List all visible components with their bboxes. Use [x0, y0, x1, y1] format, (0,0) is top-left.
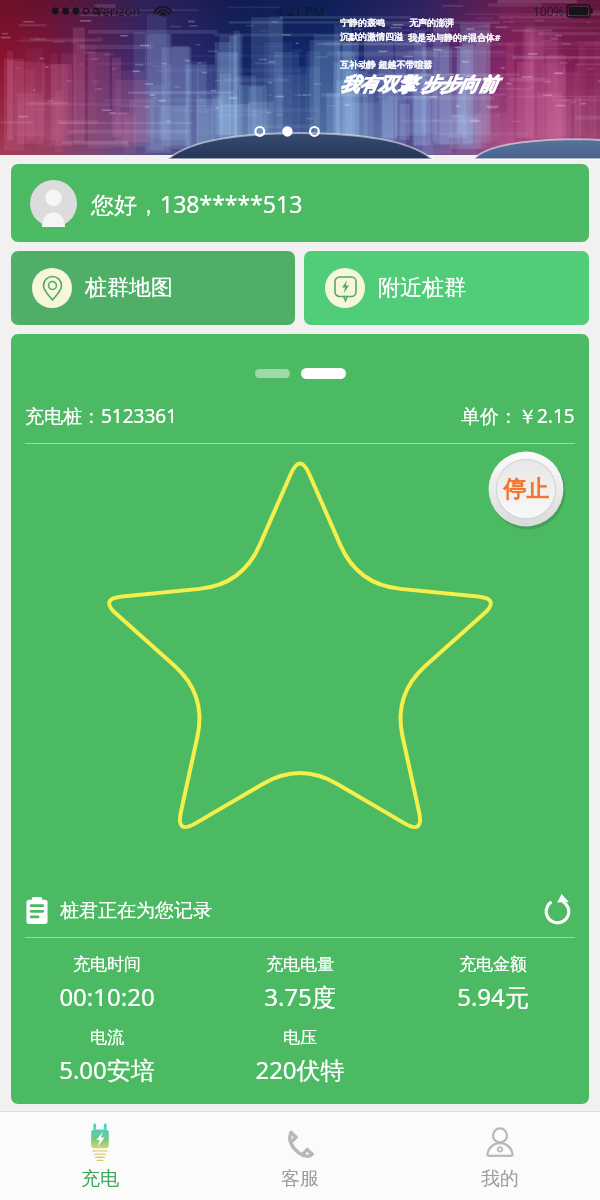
button[interactable]: 停止充电 [487, 450, 565, 528]
staticText: 我有双擎 步步向前 [340, 71, 497, 97]
staticText: 4:21 PM [276, 2, 325, 20]
staticText: 客服 [281, 1167, 319, 1191]
button[interactable]: 我的 [400, 1112, 600, 1200]
staticText: Verizon [95, 2, 141, 20]
staticText: 100% [533, 3, 564, 19]
staticText: 充电 [81, 1167, 119, 1191]
staticText: 充电时间 [73, 954, 141, 975]
staticText: 00:10:20 [59, 980, 155, 1013]
staticText: 您好，138*****513 [91, 188, 303, 219]
staticText: 5.94元 [457, 980, 529, 1013]
staticText: 互补动静 超越不带喧嚣 [340, 58, 433, 70]
button[interactable]: 桩群地图 [11, 251, 295, 325]
button[interactable]: 充电 [0, 1112, 200, 1200]
staticText: 停止 [503, 475, 549, 504]
staticText: 附近桩群 [378, 274, 466, 302]
staticText: 电流 [90, 1027, 124, 1048]
staticText: 电压 [283, 1027, 317, 1048]
button[interactable]: 客服 [200, 1112, 400, 1200]
staticText: 5.00安培 [59, 1053, 155, 1086]
staticText: 我是动与静的#混合体# [408, 31, 501, 43]
button[interactable]: 您好，138*****513 [11, 164, 589, 242]
staticText: 220伏特 [255, 1053, 345, 1086]
staticText: 无声的澎湃 [409, 17, 454, 28]
staticText: 充电桩：5123361 [25, 403, 178, 429]
staticText: 充电电量 [266, 954, 334, 975]
staticText: 我的 [481, 1167, 519, 1191]
button[interactable] [255, 369, 290, 378]
staticText: 充电金额 [459, 954, 527, 975]
staticText: 桩君正在为您记录 [60, 899, 212, 923]
staticText: 沉默的激情四溢 [340, 31, 403, 42]
staticText: 宁静的轰鸣 [340, 17, 385, 28]
button[interactable]: 附近桩群 [304, 251, 589, 325]
staticText: 单价：￥2.15 [461, 403, 575, 429]
button[interactable] [301, 368, 346, 379]
staticText: 桩群地图 [85, 274, 173, 302]
button[interactable]: 刷新 [539, 893, 575, 929]
staticText: 3.75度 [264, 980, 336, 1013]
